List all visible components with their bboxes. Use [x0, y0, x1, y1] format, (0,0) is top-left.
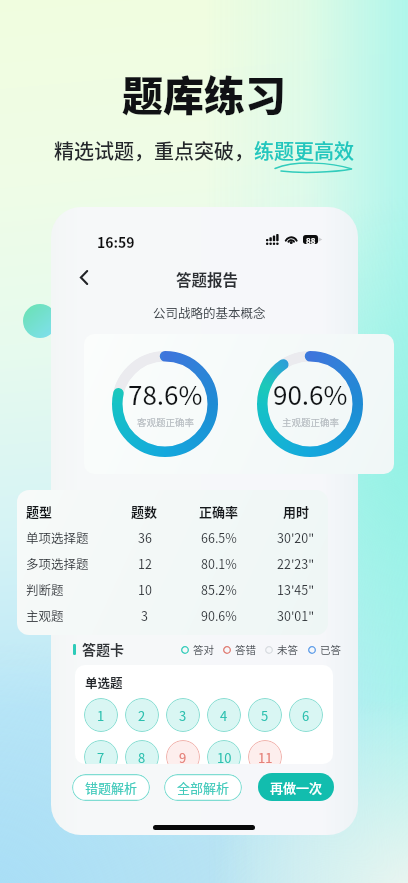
staticText: 单项选择题 [26, 528, 89, 546]
staticText: 13'45" [277, 580, 315, 598]
button[interactable]: 2 [125, 698, 159, 732]
staticText: 10 [217, 748, 232, 764]
staticText: 主观题正确率 [282, 415, 340, 429]
staticText: 30'01" [277, 606, 315, 624]
staticText: 11 [258, 748, 273, 764]
staticText: 2 [138, 706, 146, 725]
staticText: 6 [302, 706, 310, 725]
staticText: 精选试题，重点突破， [54, 136, 254, 165]
staticText: 单选题 [85, 673, 123, 691]
button[interactable]: 8 [125, 740, 159, 764]
staticText: 已答 [320, 642, 341, 657]
staticText: 全部解析 [177, 778, 230, 797]
staticText: 客观题正确率 [137, 415, 195, 429]
button[interactable]: 10 [207, 740, 241, 764]
staticText: 3 [141, 606, 148, 624]
staticText: 4 [220, 706, 228, 725]
staticText: 78.6% [128, 375, 203, 413]
staticText: 30'20" [277, 528, 315, 546]
button[interactable]: 再做一次 [258, 773, 334, 801]
staticText: 3 [179, 706, 187, 725]
staticText: 9 [179, 748, 187, 764]
button[interactable]: 6 [289, 698, 323, 732]
staticText: 7 [97, 748, 105, 764]
staticText: 答对 [193, 642, 214, 657]
button[interactable]: 7 [84, 740, 118, 764]
staticText: 用时 [283, 502, 310, 521]
staticText: 主观题 [26, 606, 64, 624]
staticText: 8 [138, 748, 146, 764]
staticText: 36 [138, 528, 152, 546]
staticText: 未答 [277, 642, 298, 657]
staticText: 公司战略的基本概念 [153, 303, 266, 321]
button[interactable]: 1 [84, 698, 118, 732]
staticText: 判断题 [26, 580, 64, 598]
staticText: 90.6% [201, 606, 237, 624]
staticText: 题库练习 [122, 63, 286, 122]
staticText: 多项选择题 [26, 554, 89, 572]
staticText: 66.5% [201, 528, 237, 546]
staticText: 答题卡 [82, 639, 124, 659]
button[interactable]: 错题解析 [72, 774, 150, 801]
staticText: 88 [306, 235, 316, 244]
staticText: 22'23" [277, 554, 315, 572]
button[interactable]: 9 [166, 740, 200, 764]
staticText: 再做一次 [270, 778, 323, 797]
button[interactable]: 5 [248, 698, 282, 732]
button[interactable]: 4 [207, 698, 241, 732]
staticText: 练题更高效 [254, 136, 354, 165]
staticText: 80.1% [201, 554, 237, 572]
staticText: 5 [261, 706, 269, 725]
staticText: 答错 [235, 642, 256, 657]
staticText: 12 [138, 554, 152, 572]
staticText: 错题解析 [85, 778, 138, 797]
staticText: 16:59 [97, 232, 135, 252]
staticText: 题型 [26, 502, 53, 521]
staticText: 正确率 [199, 502, 239, 521]
staticText: 90.6% [273, 375, 348, 413]
staticText: 85.2% [201, 580, 237, 598]
staticText: 10 [138, 580, 152, 598]
staticText: 答题报告 [176, 268, 239, 290]
button[interactable]: 11 [248, 740, 282, 764]
staticText: 1 [97, 706, 105, 725]
button[interactable]: 3 [166, 698, 200, 732]
staticText: 题数 [131, 502, 158, 521]
button[interactable]: 全部解析 [164, 774, 242, 801]
button[interactable]: Back [72, 265, 96, 289]
